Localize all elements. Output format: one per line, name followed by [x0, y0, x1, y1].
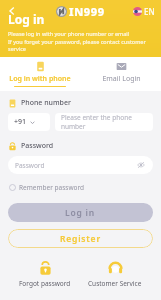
staticText: Customer Service	[88, 279, 142, 288]
staticText: +91	[14, 117, 27, 127]
button[interactable]: +91	[8, 113, 50, 131]
button[interactable]: EN	[131, 4, 157, 19]
staticText: IN999	[69, 4, 105, 19]
button[interactable]: Customer Service	[82, 259, 148, 290]
button[interactable]: Show password	[136, 160, 146, 170]
staticText: EN	[144, 6, 155, 17]
button[interactable]: Register	[8, 229, 153, 248]
staticText: Forgot password	[19, 279, 71, 288]
button[interactable]: Email Login	[80, 57, 161, 91]
button[interactable]: Remember password	[8, 181, 86, 194]
staticText: Please enter the phone number	[61, 113, 147, 131]
staticText: If you forget your password, please cont…	[8, 38, 161, 52]
staticText: Register	[60, 233, 101, 245]
button[interactable]: Forgot password	[13, 259, 77, 290]
staticText: Log in with phone	[9, 74, 71, 84]
button[interactable]: Log in	[8, 203, 153, 222]
staticText: Log in	[8, 11, 45, 27]
button[interactable]: Please enter the phone number	[55, 113, 153, 131]
staticText: Remember password	[19, 183, 85, 192]
staticText: Password	[21, 141, 54, 151]
staticText: Password	[15, 161, 45, 170]
button[interactable]: Back	[3, 2, 21, 20]
staticText: Please log in with your phone number or …	[8, 30, 130, 37]
staticText: Email Login	[102, 74, 141, 84]
button[interactable]: Password	[8, 156, 153, 174]
button[interactable]: Log in with phone	[0, 57, 80, 91]
staticText: Log in	[65, 207, 96, 219]
staticText: Phone number	[21, 98, 71, 108]
